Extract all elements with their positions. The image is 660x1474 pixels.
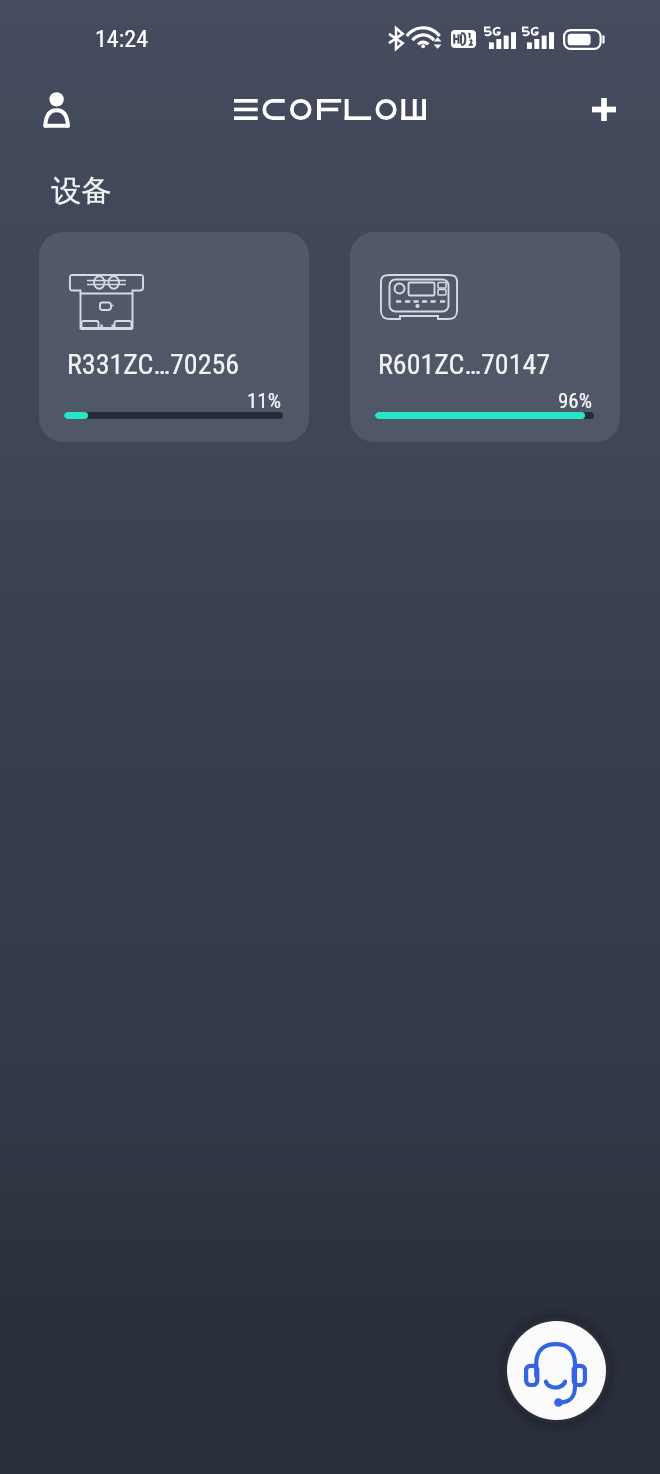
staticText: 11%	[247, 389, 282, 414]
button[interactable]: Customer service	[507, 1321, 606, 1420]
button[interactable]: R331ZC…70256	[39, 232, 309, 442]
staticText: R331ZC…70256	[67, 348, 240, 381]
button[interactable]: Add device	[574, 74, 634, 134]
staticText: R601ZC…70147	[378, 348, 551, 381]
staticText: 96%	[558, 389, 593, 414]
staticText: 设备	[51, 172, 111, 210]
button[interactable]: Account	[26, 74, 86, 134]
staticText: 14:24	[95, 25, 148, 53]
button[interactable]: R601ZC…70147	[350, 232, 620, 442]
